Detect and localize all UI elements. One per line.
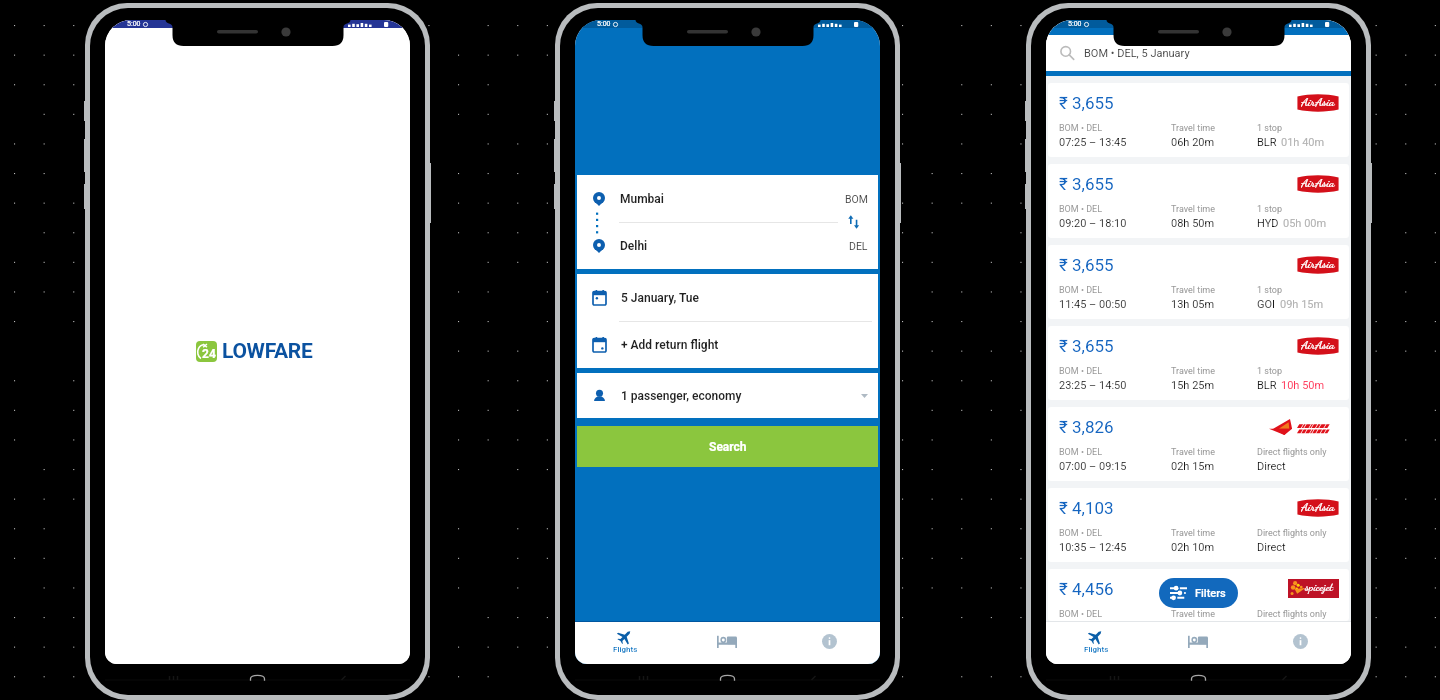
staticText: 5:00 bbox=[1068, 20, 1082, 28]
button[interactable]: Hotels bbox=[1147, 622, 1249, 664]
staticText: 1 stop bbox=[1257, 204, 1282, 215]
staticText: BOM • DEL bbox=[1059, 366, 1103, 377]
staticText: Travel time bbox=[1171, 528, 1216, 539]
staticText: 02h 10m bbox=[1171, 541, 1215, 554]
staticText: Direct bbox=[1257, 460, 1286, 473]
staticText: AirAsia bbox=[1301, 176, 1335, 190]
staticText: ₹ 3,655 bbox=[1059, 93, 1114, 113]
staticText: Filters bbox=[1195, 587, 1226, 600]
staticText: BOM bbox=[845, 193, 868, 205]
staticText: 1 stop bbox=[1257, 285, 1282, 296]
staticText: 23:25 – 14:50 bbox=[1059, 379, 1127, 392]
button[interactable]: BOM • DEL, 5 January bbox=[1046, 35, 1351, 71]
button[interactable]: Filters bbox=[1159, 578, 1238, 608]
staticText: BOM • DEL bbox=[1059, 204, 1103, 215]
staticText: DEL bbox=[849, 240, 868, 252]
staticText: Direct bbox=[1257, 541, 1286, 554]
staticText: Travel time bbox=[1171, 204, 1216, 215]
staticText: 13h 05m bbox=[1171, 298, 1215, 311]
staticText: BOM • DEL, 5 January bbox=[1084, 47, 1190, 60]
staticText: 5:00 bbox=[127, 20, 141, 28]
button[interactable]: Hotels bbox=[676, 622, 778, 664]
staticText: 06h 20m bbox=[1171, 136, 1215, 149]
staticText: BOM • DEL bbox=[1059, 609, 1103, 620]
staticText: ₹ 4,456 bbox=[1059, 579, 1114, 599]
staticText: 15h 25m bbox=[1171, 379, 1215, 392]
button[interactable]: ₹ 3,655 bbox=[1048, 164, 1349, 238]
button[interactable]: ₹ 3,826 bbox=[1048, 407, 1349, 481]
staticText: Search bbox=[709, 440, 747, 454]
staticText: 5:00 bbox=[597, 20, 611, 28]
staticText: 1 passenger, economy bbox=[621, 389, 742, 403]
staticText: 10h 50m bbox=[1281, 379, 1325, 392]
staticText: AirAsia bbox=[1301, 500, 1335, 514]
staticText: Travel time bbox=[1171, 123, 1216, 134]
button[interactable]: Flights bbox=[575, 622, 676, 664]
staticText: Travel time bbox=[1171, 447, 1216, 458]
staticText: 1 stop bbox=[1257, 123, 1282, 134]
staticText: 07:00 – 09:15 bbox=[1059, 460, 1127, 473]
staticText: Direct flights only bbox=[1257, 528, 1327, 539]
staticText: 02h 15m bbox=[1171, 460, 1215, 473]
staticText: BOM • DEL bbox=[1059, 528, 1103, 539]
staticText: 1 stop bbox=[1257, 366, 1282, 377]
staticText: Travel time bbox=[1171, 366, 1216, 377]
staticText: Mumbai bbox=[620, 192, 664, 206]
button[interactable]: Swap cities bbox=[846, 214, 862, 230]
staticText: 09:20 – 18:10 bbox=[1059, 217, 1127, 230]
staticText: 5 January, Tue bbox=[621, 291, 699, 305]
staticText: ₹ 3,655 bbox=[1059, 174, 1114, 194]
staticText: 01h 40m bbox=[1281, 136, 1325, 149]
staticText: GOI bbox=[1257, 298, 1276, 311]
staticText: 05h 00m bbox=[1283, 217, 1327, 230]
staticText: AirAsia bbox=[1301, 257, 1335, 271]
staticText: LOWFARE bbox=[222, 339, 313, 364]
button[interactable]: ₹ 3,655 bbox=[1048, 245, 1349, 319]
button[interactable]: ₹ 3,655 bbox=[1048, 326, 1349, 400]
staticText: Travel time bbox=[1171, 285, 1216, 296]
button[interactable]: Flights bbox=[1046, 622, 1147, 664]
staticText: AirAsia bbox=[1301, 95, 1335, 109]
button[interactable]: ₹ 4,456 bbox=[1048, 569, 1349, 621]
staticText: ₹ 4,103 bbox=[1059, 498, 1114, 518]
staticText: Travel time bbox=[1171, 609, 1216, 620]
staticText: AirAsia bbox=[1301, 338, 1335, 352]
staticText: ₹ 3,655 bbox=[1059, 336, 1114, 356]
button[interactable]: + Add return flight bbox=[577, 321, 878, 368]
staticText: 11:45 – 00:50 bbox=[1059, 298, 1127, 311]
button[interactable]: Search bbox=[577, 426, 878, 467]
staticText: 09h 15m bbox=[1280, 298, 1324, 311]
staticText: Direct flights only bbox=[1257, 609, 1327, 620]
button[interactable]: Mumbai bbox=[577, 175, 878, 269]
staticText: 07:25 – 13:45 bbox=[1059, 136, 1127, 149]
staticText: 24 bbox=[202, 347, 216, 361]
staticText: BLR bbox=[1257, 136, 1277, 149]
staticText: ₹ 3,655 bbox=[1059, 255, 1114, 275]
staticText: BLR bbox=[1257, 379, 1277, 392]
staticText: spicejet bbox=[1305, 581, 1333, 594]
staticText: ₹ 3,826 bbox=[1059, 417, 1114, 437]
staticText: Flights bbox=[613, 645, 638, 654]
staticText: Flights bbox=[1084, 645, 1109, 654]
button[interactable]: ₹ 3,655 bbox=[1048, 83, 1349, 157]
staticText: BOM • DEL bbox=[1059, 123, 1103, 134]
staticText: BOM • DEL bbox=[1059, 447, 1103, 458]
staticText: + Add return flight bbox=[621, 338, 719, 352]
staticText: HYD bbox=[1257, 217, 1279, 230]
button[interactable]: 5 January, Tue bbox=[577, 274, 878, 321]
button[interactable]: 1 passenger, economy bbox=[577, 373, 878, 418]
button[interactable]: Info bbox=[778, 622, 880, 664]
staticText: Direct flights only bbox=[1257, 447, 1327, 458]
button[interactable]: Info bbox=[1249, 622, 1351, 664]
button[interactable]: ₹ 4,103 bbox=[1048, 488, 1349, 562]
staticText: 10:35 – 12:45 bbox=[1059, 541, 1127, 554]
staticText: BOM • DEL bbox=[1059, 285, 1103, 296]
staticText: Delhi bbox=[620, 239, 648, 253]
staticText: 08h 50m bbox=[1171, 217, 1215, 230]
